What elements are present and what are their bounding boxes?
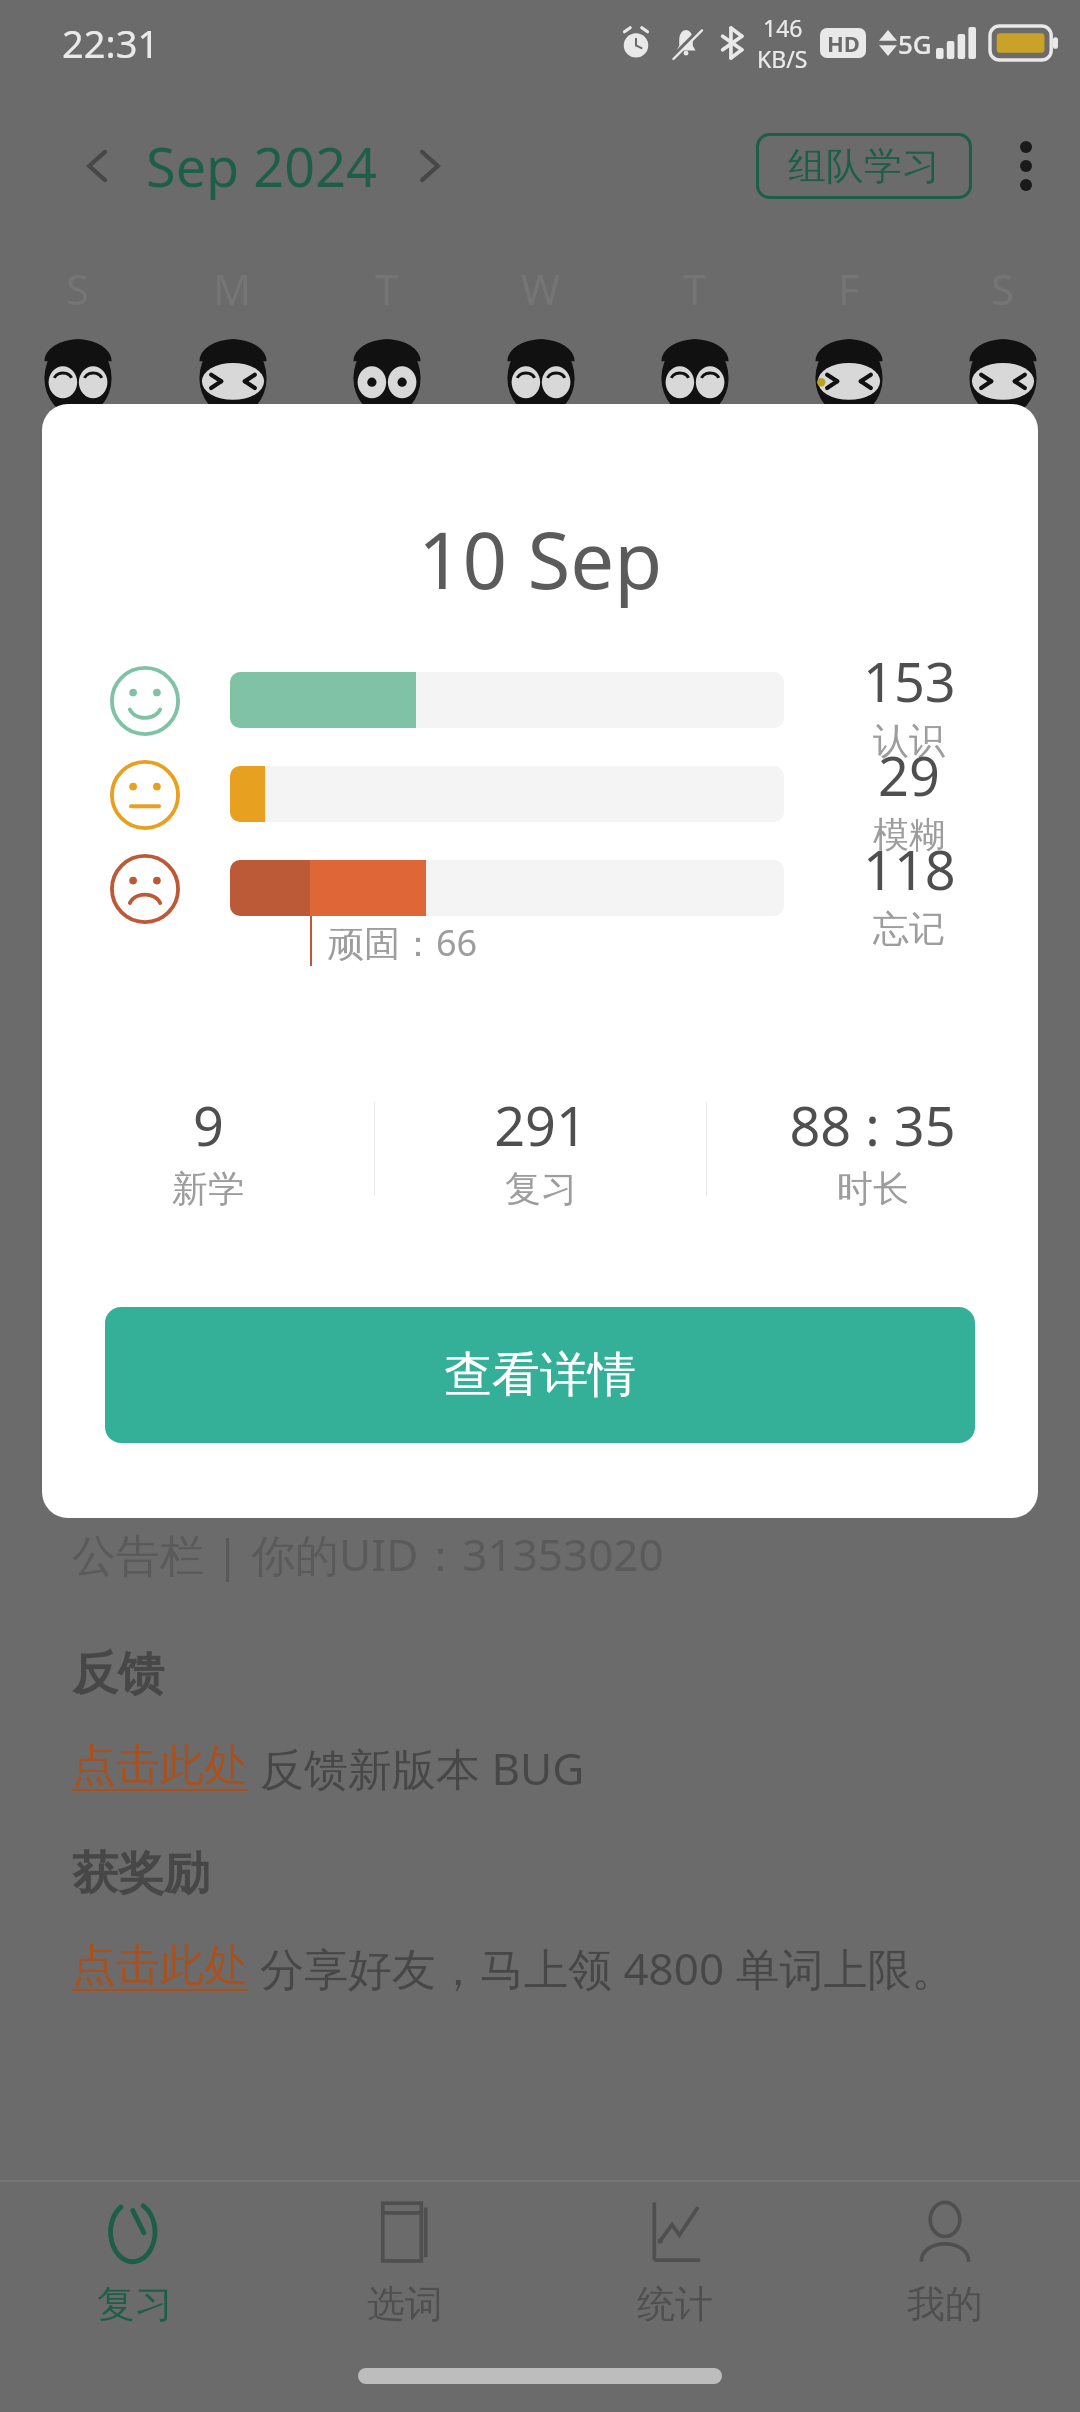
staticText: KB/S: [757, 43, 808, 74]
button[interactable]: 统计: [540, 2182, 810, 2368]
staticText: 5G: [898, 26, 932, 61]
staticText: 选词: [367, 2280, 443, 2328]
staticText: 查看详情: [444, 1345, 636, 1405]
button[interactable]: 291: [375, 1084, 706, 1214]
button[interactable]: Previous month: [70, 138, 126, 194]
button[interactable]: 复习: [0, 2182, 270, 2368]
button[interactable]: 9: [42, 1084, 374, 1214]
staticText: W: [521, 260, 561, 317]
staticText: 忘记: [873, 906, 945, 951]
staticText: 146: [763, 12, 803, 43]
staticText: 分享好友，马上领 4800 单词上限。: [260, 1938, 956, 1998]
staticText: M: [213, 260, 252, 317]
staticText: 反馈: [72, 1645, 164, 1703]
button[interactable]: 88 : 35: [707, 1084, 1038, 1214]
staticText: 模糊: [873, 812, 945, 857]
button[interactable]: 点击此处: [72, 1738, 248, 1793]
button[interactable]: 我的: [810, 2182, 1080, 2368]
staticText: 公告栏 | 你的UID：31353020: [72, 1524, 664, 1584]
staticText: 获奖励: [72, 1845, 210, 1903]
staticText: HD: [827, 28, 860, 58]
staticText: 组队学习: [788, 142, 940, 190]
staticText: 10 Sep: [418, 506, 663, 612]
staticText: 153: [863, 644, 956, 718]
button[interactable]: Sep 2024: [146, 129, 377, 203]
staticText: T: [375, 260, 399, 317]
staticText: F: [838, 260, 860, 317]
staticText: 统计: [637, 2280, 713, 2328]
staticText: 新学: [172, 1166, 244, 1211]
button[interactable]: More options: [998, 138, 1054, 194]
button[interactable]: Next month: [401, 138, 457, 194]
staticText: S: [991, 260, 1015, 317]
staticText: 反馈新版本 BUG: [260, 1738, 585, 1798]
staticText: 时长: [837, 1166, 909, 1211]
staticText: S: [66, 260, 90, 317]
button[interactable]: 点击此处: [72, 1938, 248, 1993]
staticText: 22:31: [62, 17, 160, 69]
button[interactable]: 查看详情: [105, 1307, 975, 1443]
staticText: 118: [863, 832, 956, 906]
staticText: 29: [878, 738, 940, 812]
staticText: 9: [193, 1088, 224, 1162]
staticText: 顽固：66: [328, 918, 478, 967]
staticText: 认识: [873, 718, 945, 763]
staticText: 我的: [907, 2280, 983, 2328]
staticText: 复习: [505, 1166, 577, 1211]
staticText: 复习: [97, 2280, 173, 2328]
staticText: 291: [494, 1088, 587, 1162]
staticText: T: [683, 260, 707, 317]
button[interactable]: 组队学习: [756, 133, 972, 199]
button[interactable]: 选词: [270, 2182, 540, 2368]
staticText: 88 : 35: [789, 1088, 956, 1162]
